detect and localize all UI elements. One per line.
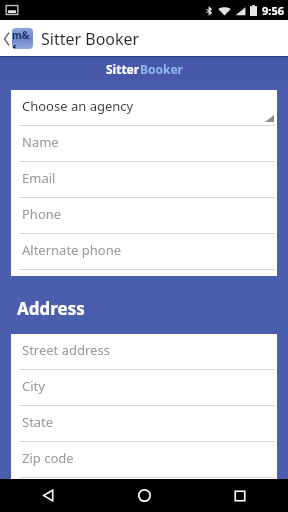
button[interactable]: City (11, 370, 277, 406)
staticText: Sitter (106, 61, 140, 77)
staticText: State (22, 413, 54, 431)
staticText: Booker (140, 61, 183, 77)
button[interactable]: Zip code (11, 442, 277, 478)
button[interactable]: Home (96, 479, 192, 512)
button[interactable]: Street address (11, 334, 277, 370)
staticText: Choose an agency (22, 97, 134, 115)
button[interactable]: Choose an agency (11, 90, 277, 126)
button[interactable]: Name (11, 126, 277, 162)
staticText: Street address (22, 341, 110, 359)
staticText: City (22, 377, 45, 395)
button[interactable]: Back (0, 479, 96, 512)
staticText: Address (17, 297, 85, 320)
staticText: Email (22, 169, 56, 187)
button[interactable]: m&f (0, 20, 288, 57)
button[interactable]: Phone (11, 198, 277, 234)
staticText: 9:56 (262, 3, 284, 18)
button[interactable]: Email (11, 162, 277, 198)
staticText: Phone (22, 205, 62, 223)
button[interactable]: Recent apps (192, 479, 288, 512)
staticText: Name (22, 133, 59, 151)
staticText: m&f (12, 28, 33, 49)
staticText: Zip code (22, 449, 74, 467)
staticText: Sitter Booker (41, 28, 140, 50)
button[interactable]: Alternate phone (11, 234, 277, 270)
button[interactable]: State (11, 406, 277, 442)
staticText: Alternate phone (22, 241, 122, 259)
